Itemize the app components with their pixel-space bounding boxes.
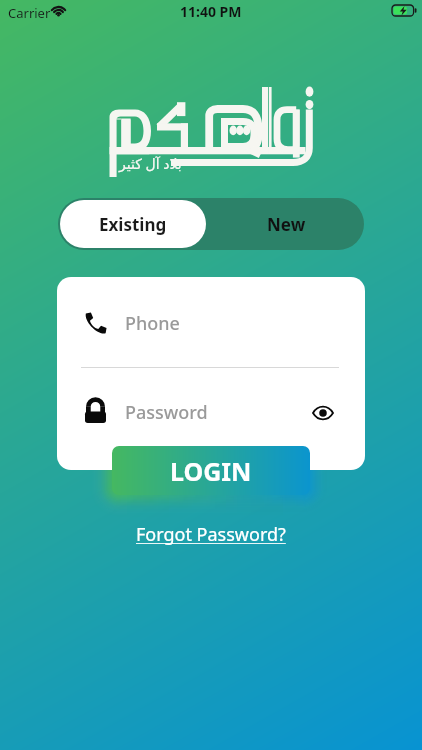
- button[interactable]: Show password: [303, 393, 343, 433]
- button[interactable]: Phone: [57, 301, 365, 346]
- staticText: Password: [125, 400, 208, 425]
- staticText: Phone: [125, 311, 180, 336]
- staticText: Forgot Password?: [136, 522, 286, 547]
- staticText: Carrier: [8, 4, 51, 22]
- staticText: 11:40 PM: [180, 2, 242, 21]
- button[interactable]: Existing: [60, 200, 206, 248]
- button[interactable]: New: [208, 198, 364, 250]
- button[interactable]: LOGIN: [112, 446, 310, 495]
- button[interactable]: Forgot Password?: [132, 518, 290, 551]
- staticText: بلاد آل كثير: [119, 154, 182, 173]
- staticText: New: [267, 213, 306, 236]
- staticText: Existing: [99, 213, 167, 236]
- staticText: LOGIN: [170, 454, 252, 488]
